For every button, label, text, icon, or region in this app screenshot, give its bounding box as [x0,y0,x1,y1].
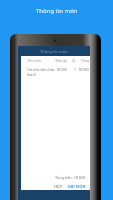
staticText: SL [67,58,76,63]
staticText: 18.000 [76,67,89,72]
staticText: Tên món [27,58,55,63]
staticText: Tổng [76,58,89,63]
staticText: Đơn giá [55,58,67,63]
staticText: HỦY [54,184,62,189]
staticText: Thông tin món [36,7,78,15]
staticText: Trà sữa trân châu thạch [27,67,55,77]
staticText: 1 [67,67,76,72]
staticText: Thông tin món [40,49,68,54]
staticText: Tổng tiền: 18.000 [55,175,86,180]
button[interactable]: ĐẶT MÓN [66,183,88,190]
staticText: 18.000 [55,67,67,72]
staticText: ĐẶT MÓN [68,184,86,189]
button[interactable]: HỦY [52,183,64,190]
